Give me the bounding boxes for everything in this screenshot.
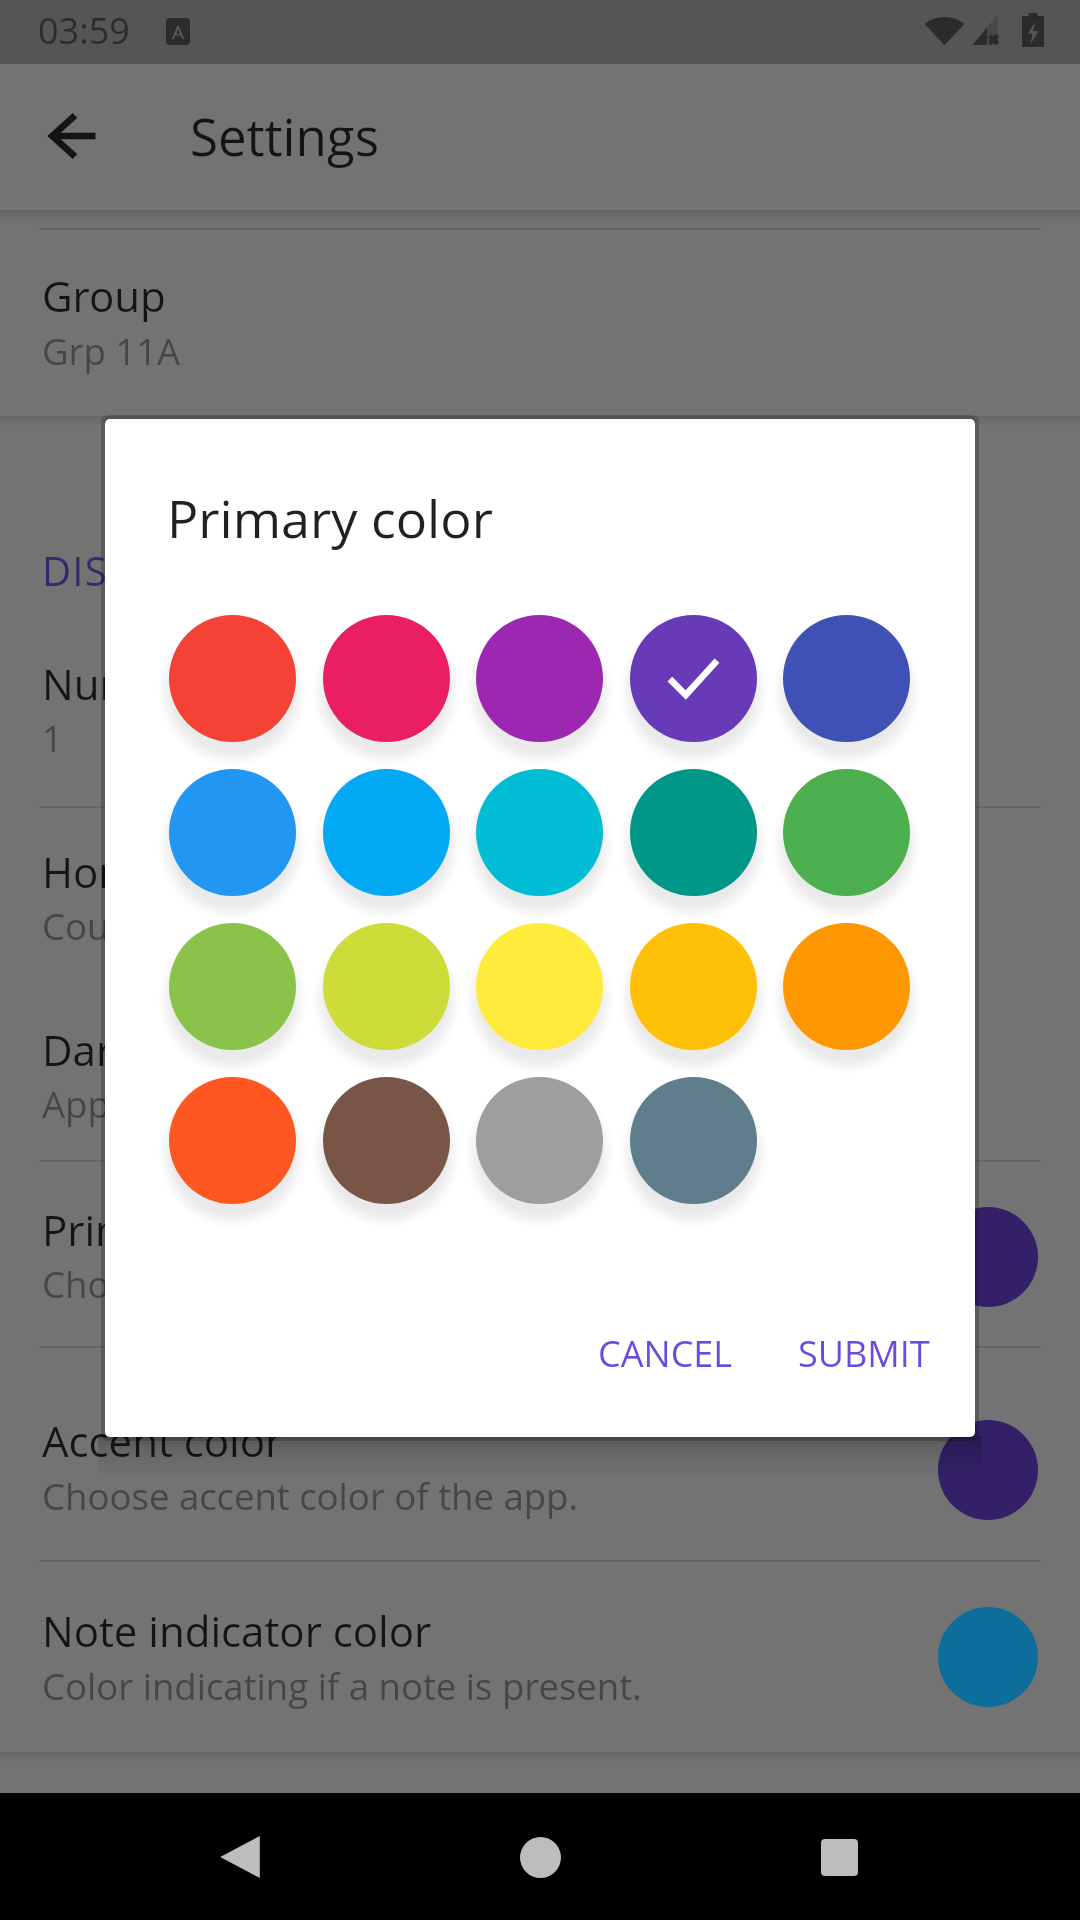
staticText: Group (42, 267, 166, 324)
button[interactable]: Recent apps (794, 1812, 884, 1902)
button[interactable]: colour 13 (476, 923, 603, 1050)
staticText: Home screen (42, 843, 302, 900)
button[interactable]: colour 12 (323, 923, 450, 1050)
button[interactable]: colour 11 (169, 923, 296, 1050)
button[interactable]: CANCEL (572, 1303, 759, 1404)
button[interactable]: colour 6 (169, 769, 296, 896)
staticText: Dark theme (42, 1021, 273, 1078)
button[interactable]: colour 5 (783, 615, 910, 742)
button[interactable]: colour 16 (169, 1077, 296, 1204)
button[interactable]: colour 14 (630, 923, 757, 1050)
staticText: Color indicating if a note is present. (42, 1661, 642, 1711)
button[interactable]: colour 19 (630, 1077, 757, 1204)
button[interactable]: colour 10 (783, 769, 910, 896)
button[interactable]: colour 7 (323, 769, 450, 896)
staticText: Primary color (167, 482, 493, 553)
staticText: Choose primary color of the app. (42, 1259, 602, 1309)
button[interactable]: colour 9 (630, 769, 757, 896)
staticText: SUBMIT (798, 1329, 930, 1378)
button[interactable]: Primary colour swatch (938, 1207, 1038, 1307)
button[interactable]: Back (195, 1812, 285, 1902)
button[interactable]: Accent colour swatch (938, 1420, 1038, 1520)
staticText: DISPLAY (42, 543, 203, 597)
staticText: Accent color (42, 1412, 283, 1469)
button[interactable]: SUBMIT (772, 1303, 956, 1404)
button[interactable]: Home (495, 1812, 585, 1902)
staticText: CANCEL (598, 1329, 733, 1378)
staticText: Count (42, 901, 145, 951)
staticText: 1 (42, 713, 63, 763)
staticText: 03:59 (38, 6, 130, 55)
button[interactable]: colour 3 (476, 615, 603, 742)
button[interactable]: colour 2 (323, 615, 450, 742)
staticText: Note indicator color (42, 1602, 432, 1659)
staticText: Choose accent color of the app. (42, 1471, 579, 1521)
staticText: Grp 11A (42, 326, 181, 376)
button[interactable]: colour 15 (783, 923, 910, 1050)
staticText: Settings (190, 101, 380, 170)
staticText: Primary color (42, 1201, 306, 1258)
staticText: Appearance (42, 1079, 246, 1129)
button[interactable]: colour 1 (169, 615, 296, 742)
button[interactable]: Note indicator colour swatch (938, 1607, 1038, 1707)
button[interactable]: colour 17 (323, 1077, 450, 1204)
staticText: A (172, 19, 185, 45)
button[interactable]: colour 8 (476, 769, 603, 896)
button[interactable]: colour 18 (476, 1077, 603, 1204)
button[interactable]: colour 4 (630, 615, 757, 742)
button[interactable]: Navigate up (30, 94, 118, 182)
staticText: Number of columns (42, 655, 434, 712)
